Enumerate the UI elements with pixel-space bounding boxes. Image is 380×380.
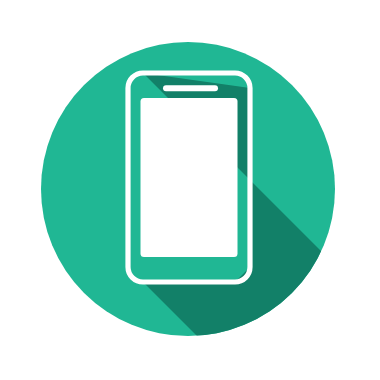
- button[interactable]: Smartphone: [0, 0, 380, 380]
